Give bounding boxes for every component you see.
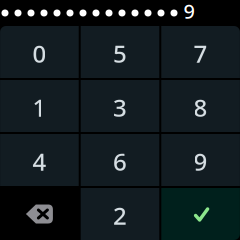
staticText: 7 <box>194 38 208 69</box>
staticText: 5 <box>113 38 127 69</box>
button[interactable]: 4 <box>0 134 79 186</box>
button[interactable]: 6 <box>81 134 159 186</box>
staticText: 4 <box>32 146 46 177</box>
button[interactable]: 5 <box>81 26 159 78</box>
button[interactable]: 2 <box>81 188 159 240</box>
staticText: 0 <box>32 38 46 69</box>
staticText: 1 <box>32 92 46 123</box>
button[interactable]: 0 <box>0 26 79 78</box>
staticText: 3 <box>113 92 127 123</box>
button[interactable]: Confirm <box>161 188 240 240</box>
staticText: 2 <box>113 200 127 231</box>
button[interactable]: 7 <box>161 26 240 78</box>
button[interactable]: 8 <box>161 80 240 132</box>
staticText: 8 <box>194 92 208 123</box>
button[interactable]: 1 <box>0 80 79 132</box>
staticText: 9 <box>183 0 194 24</box>
button[interactable]: 3 <box>81 80 159 132</box>
button[interactable]: Delete <box>0 188 79 240</box>
staticText: 9 <box>194 146 208 177</box>
button[interactable]: 9 <box>161 134 240 186</box>
staticText: 6 <box>113 146 127 177</box>
